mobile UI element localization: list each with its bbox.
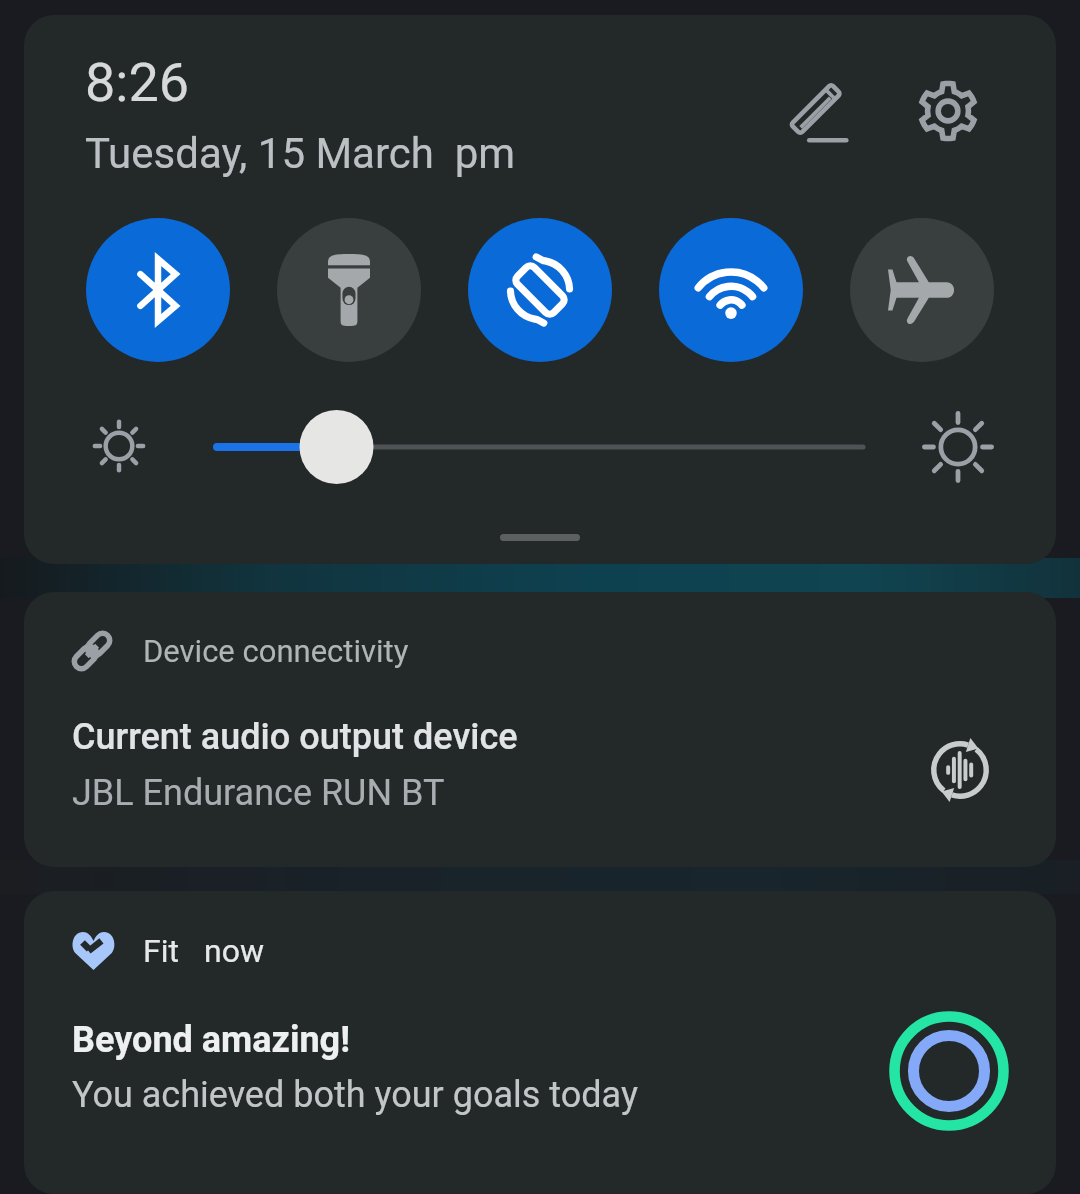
button[interactable]: Increase brightness [910,399,1006,495]
button[interactable]: Edit quick settings [768,64,864,160]
staticText: Beyond amazing! [72,1019,350,1061]
staticText: Current audio output device [72,716,518,758]
staticText: Fit [143,932,179,970]
button[interactable]: Fit [24,891,1056,1194]
staticText: 8:26 [85,51,190,114]
button[interactable]: Wi-Fi [659,218,803,362]
staticText: Device connectivity [143,633,409,669]
staticText: You achieved both your goals today [72,1074,638,1116]
button[interactable]: Device connectivity [24,592,1056,867]
button[interactable]: Flashlight [277,218,421,362]
staticText: Tuesday, 15 March pm [85,129,516,178]
button[interactable]: Bluetooth [86,218,230,362]
button[interactable]: Decrease brightness [71,398,167,494]
staticText: JBL Endurance RUN BT [72,772,445,814]
button[interactable]: Brightness [217,399,863,495]
button[interactable]: Switch audio output device [912,722,1008,818]
button[interactable]: Settings [900,63,996,159]
button[interactable]: Airplane mode [850,218,994,362]
staticText: now [204,932,264,970]
button[interactable]: Auto-rotate [468,218,612,362]
